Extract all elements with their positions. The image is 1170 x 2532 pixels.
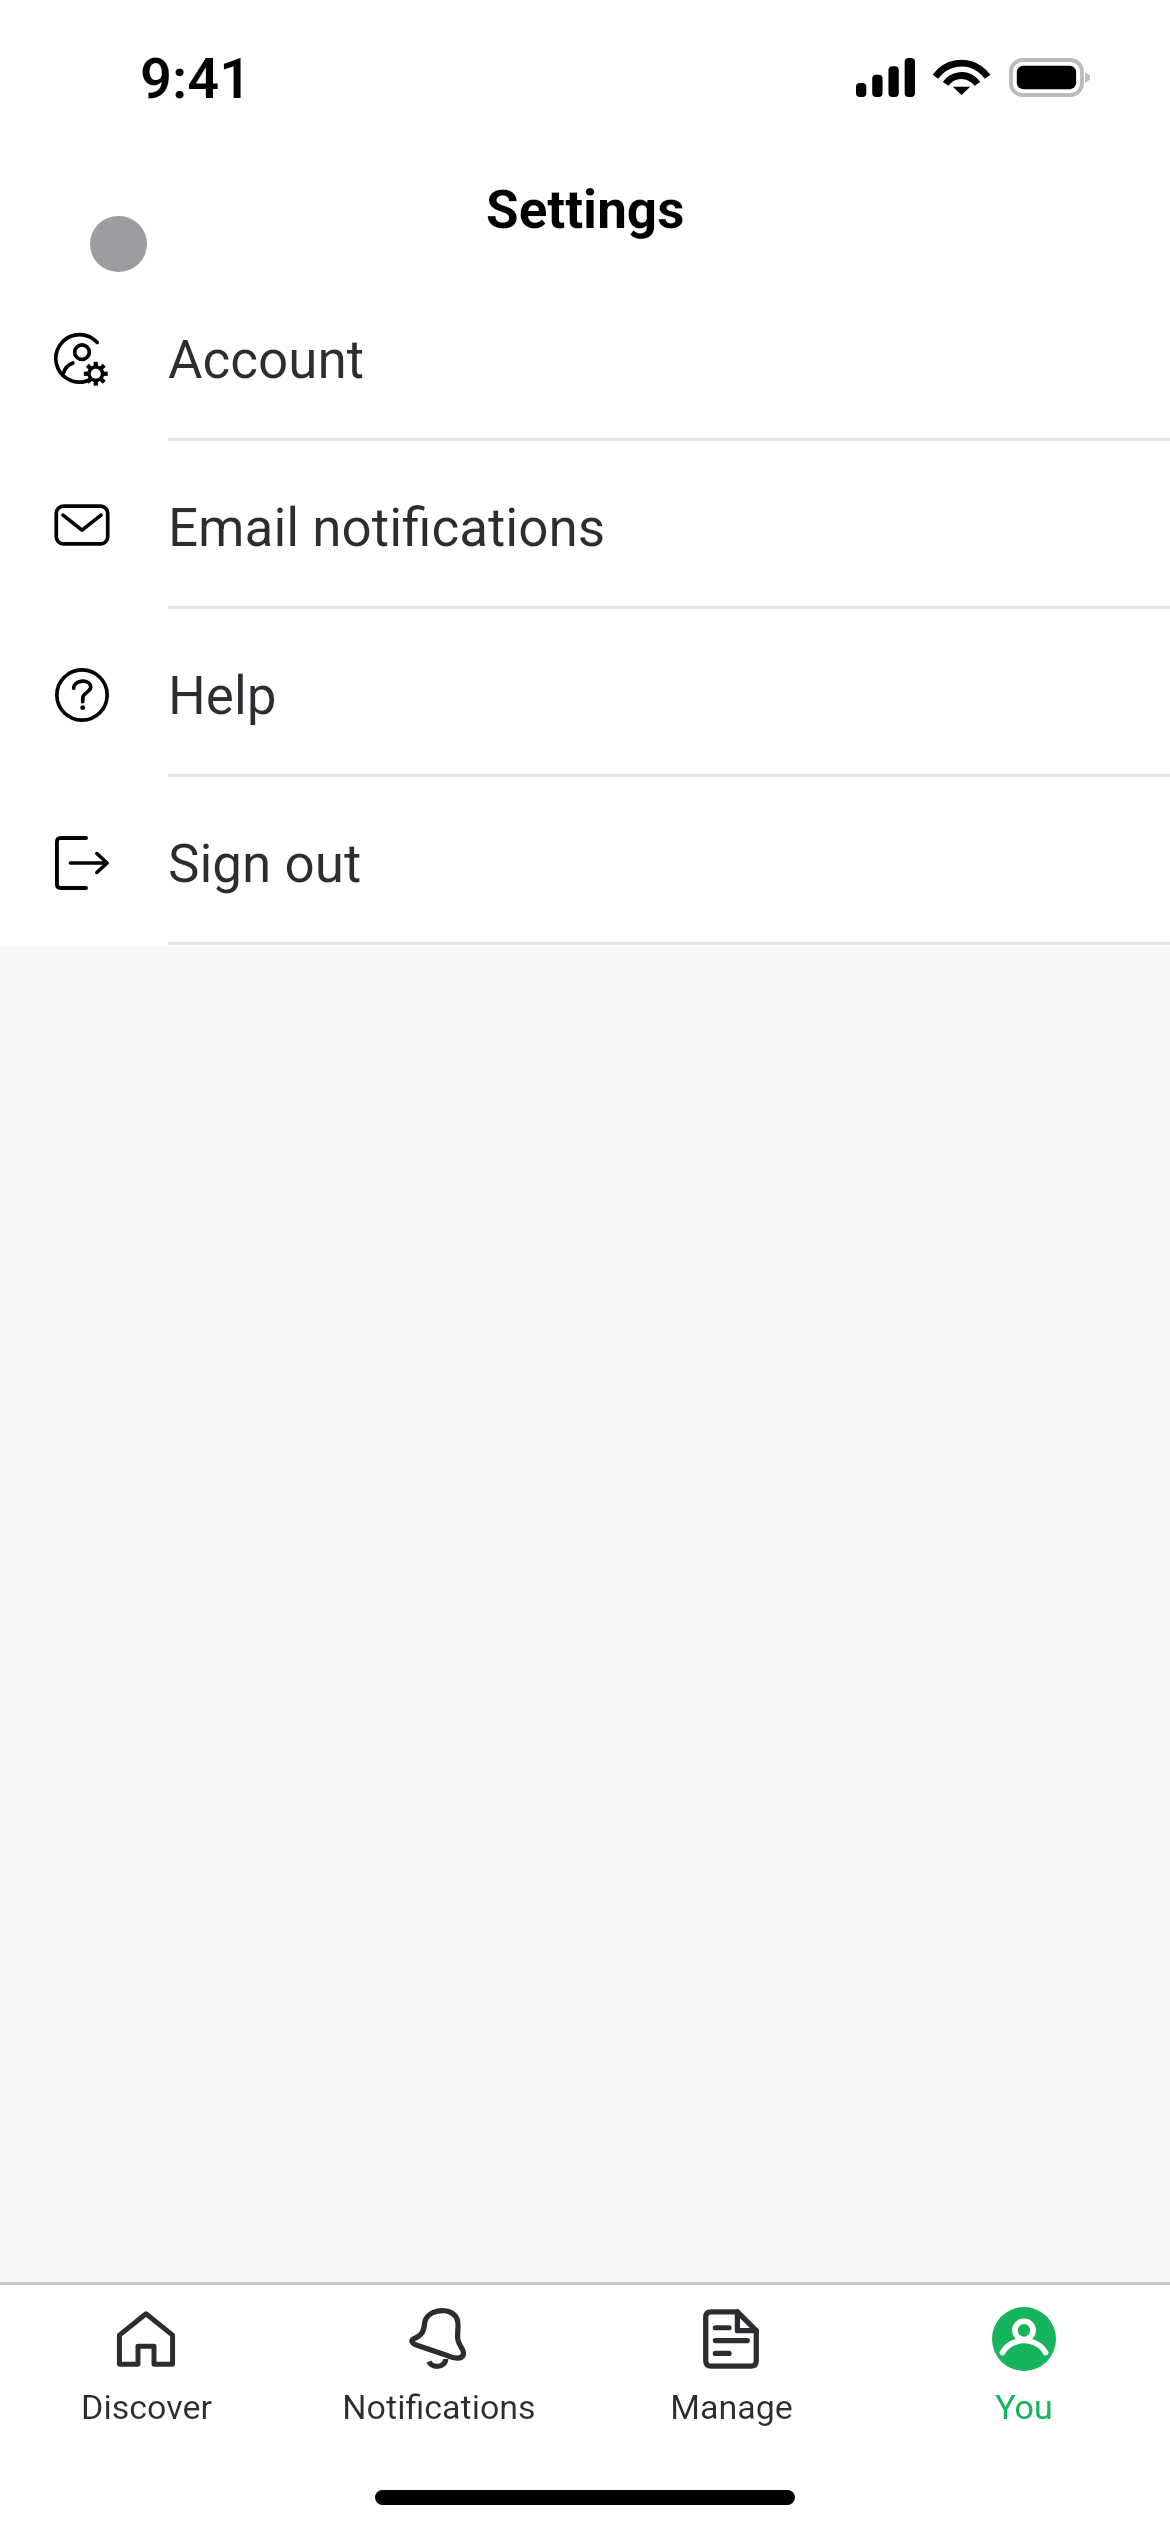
button[interactable]: Profile photo xyxy=(90,216,147,272)
button[interactable]: You xyxy=(878,2285,1170,2453)
staticText: Account xyxy=(168,329,365,391)
button[interactable]: Sign out xyxy=(0,779,1170,947)
button[interactable]: Notifications xyxy=(293,2285,585,2453)
button[interactable]: Manage xyxy=(585,2285,877,2453)
staticText: 9:41 xyxy=(140,46,252,112)
staticText: You xyxy=(995,2387,1053,2427)
staticText: Notifications xyxy=(342,2387,536,2427)
button[interactable]: Help xyxy=(0,611,1170,779)
staticText: Email notifications xyxy=(168,497,606,559)
staticText: Discover xyxy=(81,2387,212,2427)
button[interactable]: Discover xyxy=(0,2285,292,2453)
staticText: Settings xyxy=(486,179,685,241)
button[interactable]: Account xyxy=(0,275,1170,443)
button[interactable]: Email notifications xyxy=(0,443,1170,611)
staticText: Help xyxy=(168,665,277,727)
staticText: Sign out xyxy=(168,833,362,895)
staticText: Manage xyxy=(670,2387,793,2427)
